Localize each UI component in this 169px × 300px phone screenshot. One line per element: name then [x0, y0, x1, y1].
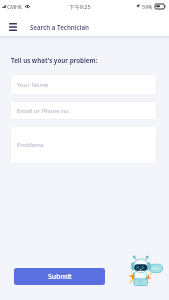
- button[interactable]: Open navigation menu: [4, 18, 21, 35]
- staticText: Email or Phone no.: [17, 107, 71, 115]
- staticText: 下午9:25: [69, 3, 91, 10]
- staticText: 59%: [142, 3, 153, 10]
- button[interactable]: Your Name: [10, 74, 157, 95]
- staticText: Problems: [17, 141, 44, 149]
- button[interactable]: Email or Phone no.: [10, 101, 157, 120]
- staticText: Tell us what's your problem:: [11, 56, 98, 64]
- button[interactable]: Submit: [14, 268, 105, 285]
- staticText: Your Name: [17, 81, 49, 89]
- staticText: CMHK: [7, 3, 23, 10]
- staticText: Search a Technician: [30, 23, 89, 31]
- button[interactable]: Problems: [10, 126, 157, 164]
- staticText: Submit: [48, 272, 72, 282]
